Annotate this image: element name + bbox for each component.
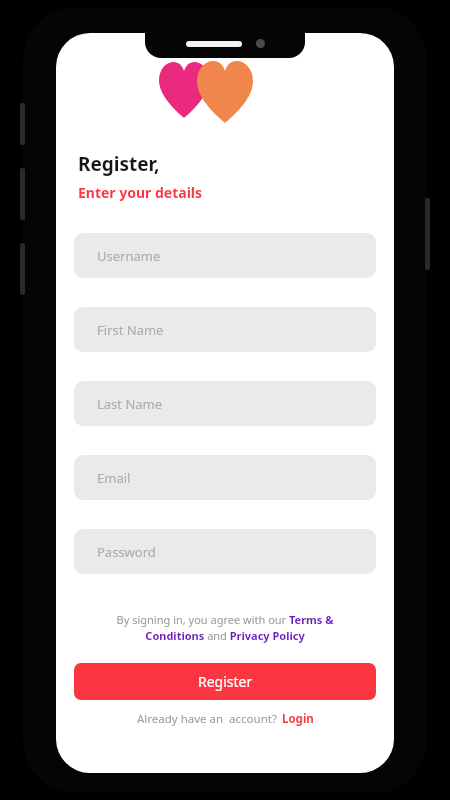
staticText: Register, (78, 151, 160, 177)
staticText: Register (198, 672, 253, 691)
button[interactable]: Register (74, 663, 376, 700)
staticText: Username (97, 247, 161, 265)
other: App logo: two hearts (56, 58, 394, 126)
staticText: Email (97, 469, 131, 487)
button[interactable]: Username (74, 233, 376, 278)
button[interactable]: Password (74, 529, 376, 574)
staticText: Enter your details (78, 183, 203, 202)
button[interactable]: Last Name (74, 381, 376, 426)
staticText: By signing in, you agree with our Terms … (94, 612, 356, 643)
button[interactable]: First Name (74, 307, 376, 352)
staticText: First Name (97, 321, 164, 339)
button[interactable]: Email (74, 455, 376, 500)
staticText: Last Name (97, 395, 163, 413)
staticText: Password (97, 543, 156, 561)
button[interactable]: Login (282, 711, 314, 727)
button[interactable]: By signing in, you agree with our Terms … (94, 612, 356, 643)
staticText: Login (282, 711, 314, 727)
staticText: Already have an account? (137, 711, 277, 727)
